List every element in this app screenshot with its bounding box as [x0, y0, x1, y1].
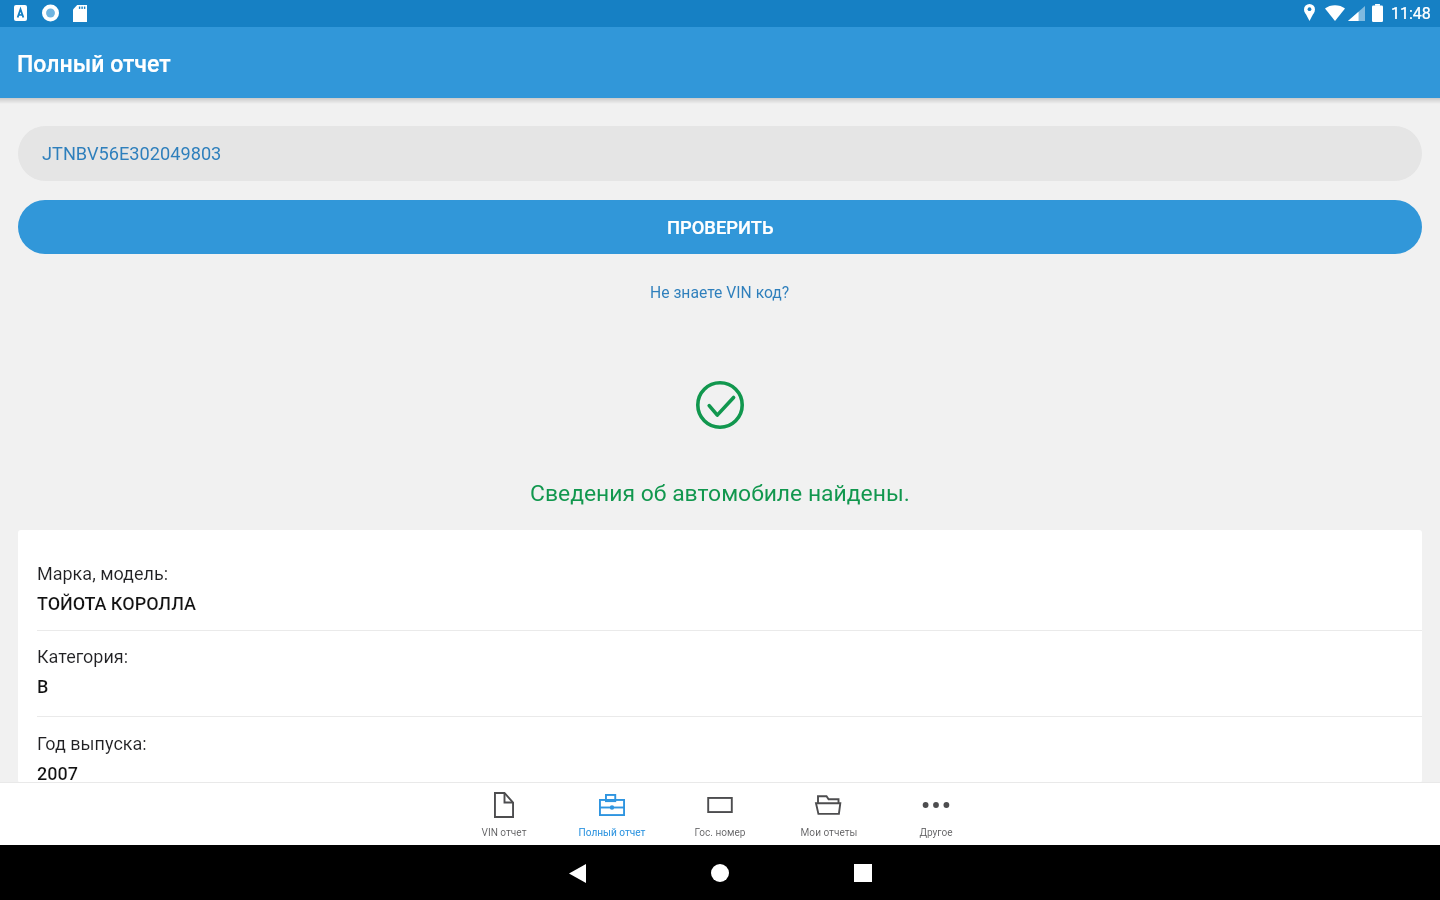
staticText: B	[37, 676, 49, 697]
button[interactable]: Гос. номер	[666, 783, 774, 845]
staticText: Полный отчет	[17, 51, 171, 78]
staticText: 11:48	[1391, 4, 1431, 23]
staticText: VIN отчет	[450, 827, 558, 839]
staticText: Мои отчеты	[775, 827, 883, 839]
button[interactable]: VIN отчет	[450, 783, 558, 845]
staticText: JTNBV56E302049803	[42, 143, 222, 164]
button[interactable]: Не знаете VIN код?	[644, 281, 796, 303]
staticText: Марка, модель:	[37, 563, 169, 584]
button[interactable]: Мои отчеты	[775, 783, 883, 845]
staticText: Полный отчет	[558, 827, 666, 839]
staticText: Гос. номер	[666, 827, 774, 839]
button[interactable]: JTNBV56E302049803	[18, 126, 1422, 181]
button[interactable]: Другое	[882, 783, 990, 845]
staticText: Год выпуска:	[37, 733, 147, 754]
button[interactable]: ПРОВЕРИТЬ	[18, 200, 1422, 254]
staticText: Сведения об автомобиле найдены.	[530, 480, 910, 507]
staticText: ТОЙОТА КОРОЛЛА	[37, 593, 197, 614]
staticText: 2007	[37, 763, 78, 783]
staticText: Другое	[882, 827, 990, 839]
button[interactable]: Recents	[840, 850, 886, 896]
button[interactable]: Home	[697, 850, 743, 896]
staticText: ПРОВЕРИТЬ	[667, 217, 774, 238]
button[interactable]: Back	[554, 850, 600, 896]
button[interactable]: Полный отчет	[558, 783, 666, 845]
staticText: Категория:	[37, 646, 129, 667]
